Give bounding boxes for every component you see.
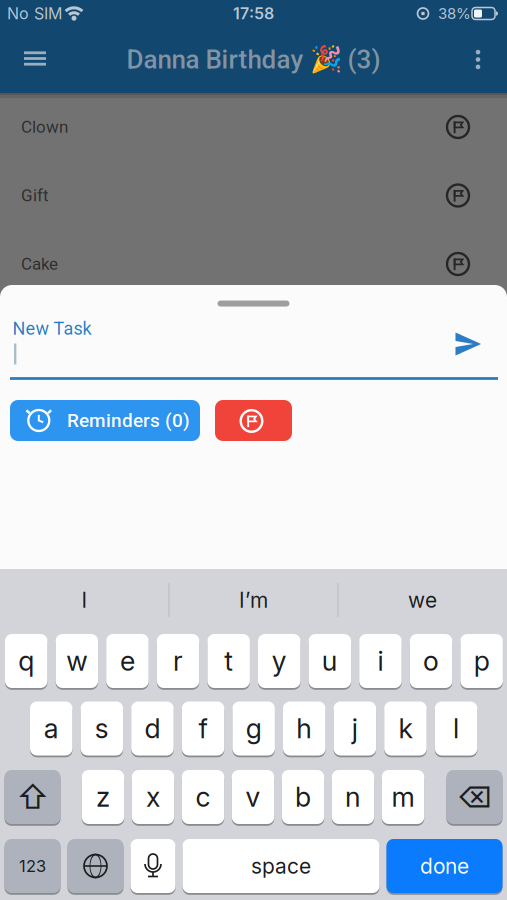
button[interactable]: z	[82, 769, 124, 825]
staticText: n	[345, 781, 361, 813]
button[interactable]: done	[386, 838, 502, 894]
staticText: done	[420, 853, 469, 879]
button[interactable]: a	[30, 700, 72, 756]
staticText: p	[474, 645, 490, 677]
staticText: f	[199, 712, 208, 745]
staticText: i	[377, 645, 383, 677]
button[interactable]: More options	[460, 37, 496, 81]
button[interactable]: k	[384, 700, 427, 756]
button[interactable]: 123	[4, 838, 60, 894]
staticText: h	[296, 712, 312, 745]
staticText: w	[66, 645, 87, 677]
button[interactable]: I	[4, 578, 164, 622]
staticText: Clown	[21, 117, 68, 137]
staticText: m	[391, 781, 414, 813]
button[interactable]: Delete	[446, 769, 502, 825]
button[interactable]: j	[334, 700, 376, 756]
button[interactable]: f	[182, 700, 224, 756]
staticText: ⇧	[16, 778, 48, 816]
button[interactable]: q	[5, 633, 47, 689]
staticText: l	[453, 712, 459, 745]
button[interactable]: I’m	[173, 578, 333, 622]
staticText: New Task	[12, 318, 91, 339]
staticText: 38%	[438, 4, 471, 22]
button[interactable]: d	[131, 700, 174, 756]
button[interactable]: Gift	[0, 161, 507, 229]
button[interactable]: m	[382, 769, 424, 825]
staticText: No SIM	[7, 4, 62, 23]
staticText: a	[44, 712, 59, 745]
staticText: I’m	[239, 587, 268, 613]
button[interactable]: l	[435, 700, 477, 756]
staticText: q	[18, 645, 34, 677]
button[interactable]: g	[232, 700, 275, 756]
button[interactable]: we	[342, 578, 502, 622]
staticText: k	[398, 712, 412, 745]
staticText: x	[146, 781, 160, 813]
staticText: c	[195, 781, 210, 813]
button[interactable]: i	[359, 633, 402, 689]
staticText: e	[120, 645, 135, 677]
button[interactable]: Next keyboard	[67, 838, 123, 894]
staticText: z	[96, 781, 110, 813]
button[interactable]: h	[283, 700, 325, 756]
button[interactable]: Clown	[0, 93, 507, 161]
staticText: Reminders (0)	[67, 409, 190, 432]
staticText: j	[352, 712, 358, 745]
button[interactable]: s	[81, 700, 123, 756]
staticText: space	[251, 853, 311, 879]
staticText: u	[322, 645, 338, 677]
button[interactable]: c	[182, 769, 224, 825]
button[interactable]: n	[332, 769, 374, 825]
button[interactable]: Menu	[15, 38, 55, 78]
staticText: g	[246, 712, 262, 745]
button[interactable]: Add task	[0, 0, 507, 900]
button[interactable]: r	[157, 633, 199, 689]
staticText: v	[245, 781, 260, 813]
staticText: b	[295, 781, 311, 813]
staticText: y	[272, 645, 287, 677]
staticText: d	[144, 712, 160, 745]
button[interactable]: space	[182, 838, 379, 894]
staticText: we	[408, 587, 437, 613]
button[interactable]: o	[410, 633, 452, 689]
button[interactable]: u	[309, 633, 351, 689]
staticText: Cake	[21, 254, 58, 274]
staticText: I	[81, 587, 87, 613]
button[interactable]: y	[258, 633, 300, 689]
button[interactable]: w	[56, 633, 98, 689]
button[interactable]: Cake	[0, 230, 507, 298]
staticText: t	[224, 645, 233, 677]
staticText: 123	[19, 856, 46, 876]
button[interactable]: Reminders	[10, 400, 200, 441]
button[interactable]: Dictate	[130, 838, 175, 894]
button[interactable]: Shift	[4, 769, 60, 825]
staticText: ⌫	[457, 779, 492, 815]
staticText: Danna Birthday 🎉 (3)	[126, 44, 380, 75]
button[interactable]: t	[207, 633, 250, 689]
button[interactable]: v	[232, 769, 274, 825]
button[interactable]: Flag	[215, 400, 292, 441]
staticText: r	[173, 645, 183, 677]
button[interactable]: p	[460, 633, 503, 689]
button[interactable]: x	[132, 769, 174, 825]
button[interactable]: b	[282, 769, 324, 825]
button[interactable]: e	[106, 633, 149, 689]
staticText: o	[423, 645, 439, 677]
staticText: s	[95, 712, 109, 745]
staticText: Gift	[21, 185, 49, 205]
staticText: 17:58	[233, 4, 274, 23]
